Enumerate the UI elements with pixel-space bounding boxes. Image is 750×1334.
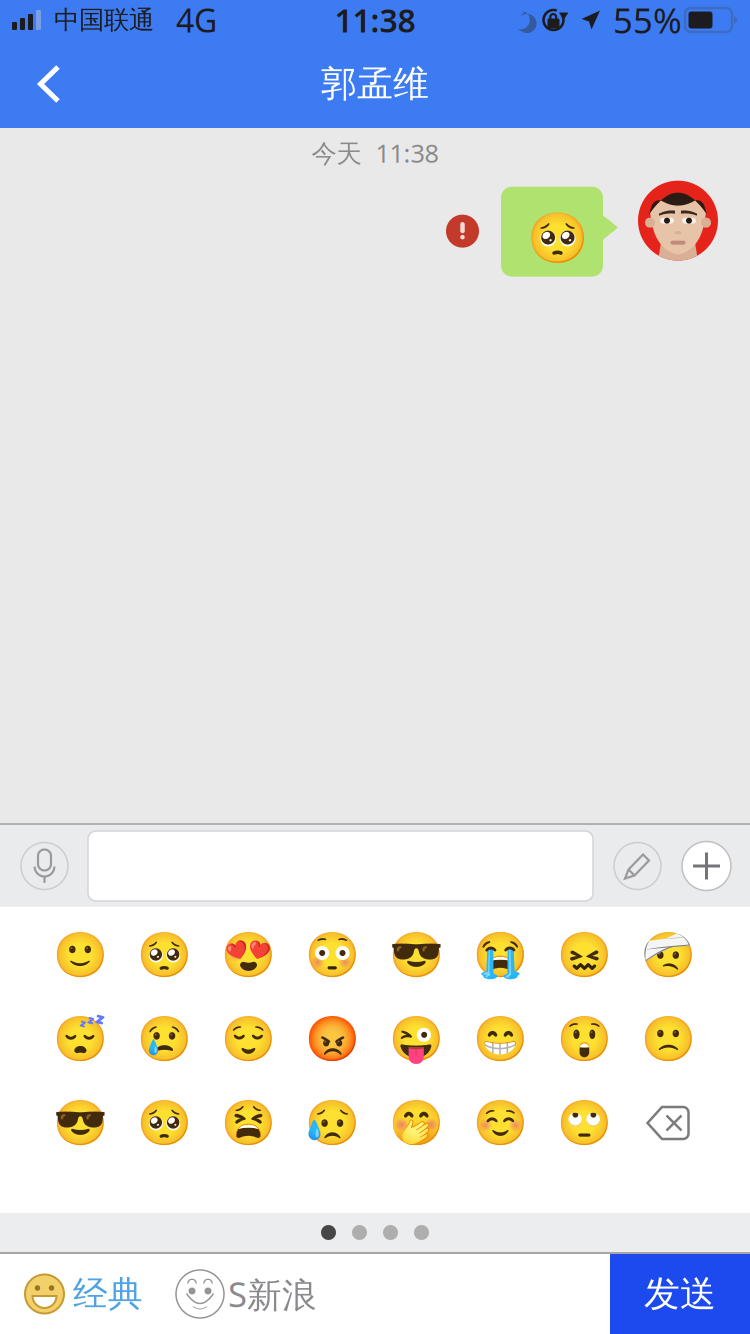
- staticText: 中国联通: [54, 4, 154, 35]
- staticText: 😍: [220, 930, 275, 980]
- button[interactable]: 🥺: [122, 913, 206, 997]
- button[interactable]: Draw: [614, 842, 661, 889]
- button[interactable]: 🙂: [38, 913, 122, 997]
- button[interactable]: 😎: [38, 1081, 122, 1165]
- staticText: 😭: [472, 930, 527, 980]
- button[interactable]: 🥺: [122, 1081, 206, 1165]
- staticText: 😲: [556, 1014, 611, 1064]
- staticText: 经典: [73, 1273, 143, 1315]
- button[interactable]: Back: [0, 40, 86, 127]
- button[interactable]: 🤭: [374, 1081, 458, 1165]
- staticText: 4G: [176, 0, 217, 41]
- staticText: 😡: [304, 1014, 359, 1064]
- staticText: 郭孟维: [321, 62, 429, 106]
- button[interactable]: S新浪: [161, 1254, 326, 1334]
- staticText: 😢: [136, 1014, 191, 1064]
- button[interactable]: Voice message: [21, 842, 68, 889]
- staticText: 🥺: [136, 930, 191, 980]
- staticText: 😁: [472, 1014, 527, 1064]
- button[interactable]: Delete: [626, 1081, 710, 1165]
- button[interactable]: 😡: [290, 997, 374, 1081]
- staticText: 😴: [52, 1014, 107, 1064]
- button[interactable]: 😖: [542, 913, 626, 997]
- button[interactable]: 🙁: [626, 997, 710, 1081]
- staticText: 🙂: [52, 930, 107, 980]
- staticText: 😥: [304, 1098, 359, 1148]
- staticText: 发送: [644, 1272, 716, 1316]
- button[interactable]: ☺️: [458, 1081, 542, 1165]
- staticText: 🤭: [388, 1098, 443, 1148]
- button[interactable]: More: [682, 841, 731, 890]
- staticText: 🥺: [136, 1098, 191, 1148]
- button[interactable]: 🤕: [626, 913, 710, 997]
- staticText: 55%: [613, 0, 682, 43]
- staticText: 🙁: [640, 1014, 695, 1064]
- staticText: 😜: [388, 1014, 443, 1064]
- staticText: 🙄: [556, 1098, 611, 1148]
- button[interactable]: 经典: [0, 1254, 161, 1334]
- staticText: 🥺: [527, 210, 588, 266]
- staticText: S新浪: [228, 1271, 317, 1317]
- staticText: 😎: [52, 1098, 107, 1148]
- button[interactable]: 😳: [290, 913, 374, 997]
- button[interactable]: 🙄: [542, 1081, 626, 1165]
- button[interactable]: 😢: [122, 997, 206, 1081]
- staticText: 🤕: [640, 930, 695, 980]
- button[interactable]: Contact avatar: [638, 181, 718, 261]
- button[interactable]: 😲: [542, 997, 626, 1081]
- staticText: 😖: [556, 930, 611, 980]
- button[interactable]: 😫: [206, 1081, 290, 1165]
- button[interactable]: 发送: [610, 1254, 750, 1334]
- staticText: 😌: [220, 1014, 275, 1064]
- staticText: 😎: [388, 930, 443, 980]
- button[interactable]: 🥺: [501, 187, 619, 277]
- button[interactable]: 😁: [458, 997, 542, 1081]
- button[interactable]: 😌: [206, 997, 290, 1081]
- staticText: 😳: [304, 930, 359, 980]
- staticText: 今天 11:38: [311, 136, 438, 170]
- button[interactable]: 😭: [458, 913, 542, 997]
- staticText: ☺️: [472, 1098, 527, 1148]
- staticText: 11:38: [334, 0, 415, 41]
- button[interactable]: 😍: [206, 913, 290, 997]
- button[interactable]: 😥: [290, 1081, 374, 1165]
- staticText: 😫: [220, 1098, 275, 1148]
- button[interactable]: 😜: [374, 997, 458, 1081]
- button[interactable]: 😴: [38, 997, 122, 1081]
- button[interactable]: 😎: [374, 913, 458, 997]
- button[interactable]: Resend failed message: [446, 215, 479, 248]
- button[interactable]: [88, 831, 593, 901]
